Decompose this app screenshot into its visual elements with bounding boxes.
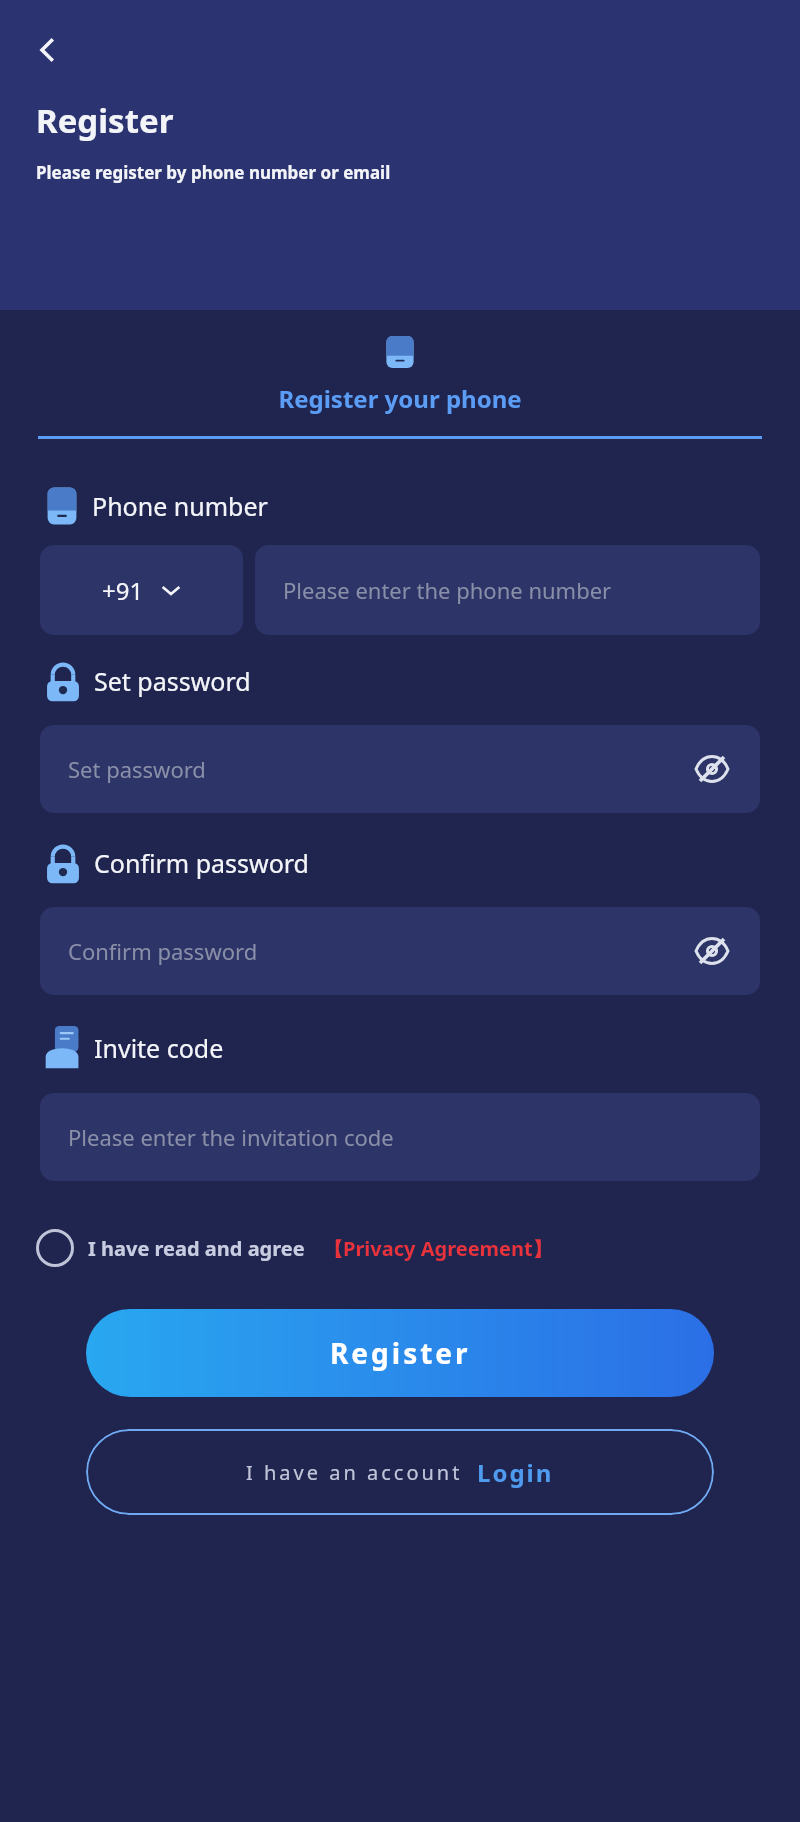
button[interactable]: Confirm password	[40, 907, 760, 995]
staticText: Phone number	[92, 489, 268, 523]
staticText: Register	[330, 1334, 471, 1372]
staticText: Confirm password	[68, 936, 258, 966]
staticText: +91	[102, 574, 144, 607]
button[interactable]: Show password	[686, 925, 738, 977]
button[interactable]: Register your phone	[0, 310, 800, 439]
staticText: Confirm password	[94, 846, 309, 880]
staticText: 【Privacy Agreement】	[323, 1235, 553, 1262]
button[interactable]: Please enter the invitation code	[40, 1093, 760, 1181]
staticText: Set password	[68, 754, 206, 784]
staticText: Register your phone	[278, 382, 522, 415]
button[interactable]: Set password	[40, 725, 760, 813]
staticText: Register	[36, 98, 174, 143]
staticText: I have an account	[246, 1459, 463, 1486]
staticText: Please enter the phone number	[283, 575, 612, 605]
staticText: Please register by phone number or email	[36, 161, 391, 184]
staticText: Login	[477, 1456, 554, 1489]
button[interactable]: Please enter the phone number	[255, 545, 760, 635]
button[interactable]: Show password	[686, 743, 738, 795]
staticText: I have read and agree	[88, 1235, 305, 1262]
button[interactable]: I have read and agree	[36, 1229, 553, 1267]
button[interactable]: +91	[40, 545, 243, 635]
staticText: Invite code	[94, 1031, 224, 1065]
staticText: Set password	[94, 664, 251, 698]
button[interactable]: Register	[86, 1309, 714, 1397]
button[interactable]: Back	[18, 20, 78, 80]
staticText: Please enter the invitation code	[68, 1122, 394, 1152]
button[interactable]: I have an account	[86, 1429, 714, 1515]
